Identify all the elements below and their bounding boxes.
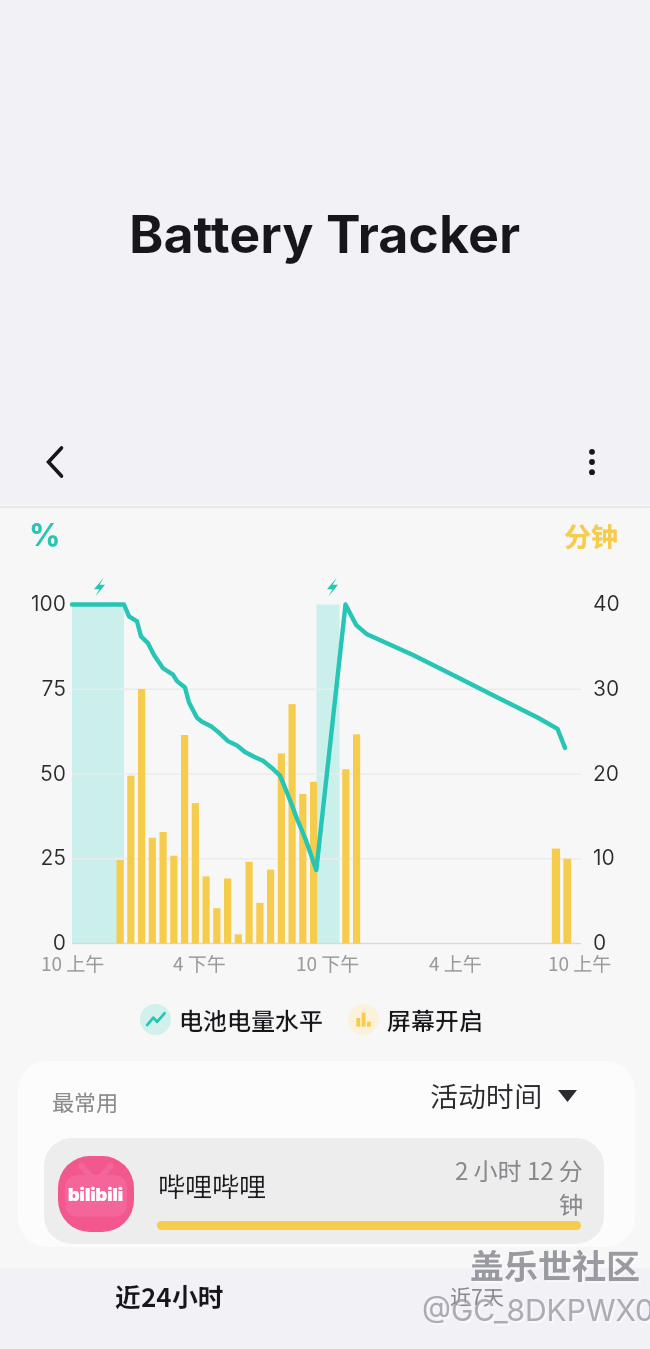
staticText: 20	[593, 761, 620, 786]
button[interactable]: Back	[27, 434, 83, 490]
button[interactable]: 屏幕开启	[348, 1002, 483, 1037]
button[interactable]: bilibili	[44, 1138, 604, 1244]
staticText: %	[29, 516, 61, 554]
staticText: 75	[0, 676, 66, 701]
staticText: 4 上午	[429, 949, 482, 977]
staticText: 30	[593, 676, 620, 701]
button[interactable]: 活动时间	[430, 1075, 577, 1116]
button[interactable]: 电池电量水平	[140, 1002, 323, 1037]
staticText: 10	[593, 845, 615, 870]
staticText: 盖乐世社区	[472, 1242, 642, 1291]
staticText: 10 下午	[296, 949, 360, 977]
staticText: 盖乐世社区	[470, 1240, 640, 1289]
staticText: 2 小时 12 分钟	[438, 1152, 583, 1221]
staticText: 分钟	[564, 516, 618, 555]
staticText: Battery Tracker	[129, 203, 521, 266]
staticText: 40	[593, 591, 620, 616]
staticText: @GC_8DKPWX0	[424, 1294, 650, 1330]
staticText: 0	[593, 930, 607, 955]
staticText: 电池电量水平	[179, 1002, 323, 1037]
button[interactable]: 近24小时	[54, 1274, 284, 1318]
staticText: 0	[0, 930, 66, 955]
button[interactable]: 近7天	[387, 1276, 567, 1316]
staticText: 4 下午	[173, 949, 226, 977]
staticText: 100	[0, 591, 66, 616]
staticText: 最常用	[52, 1085, 119, 1117]
staticText: 25	[0, 845, 66, 870]
staticText: bilibili	[68, 1184, 124, 1206]
staticText: 50	[0, 761, 66, 786]
staticText: 活动时间	[430, 1075, 543, 1116]
staticText: 近7天	[450, 1281, 504, 1311]
staticText: 屏幕开启	[387, 1002, 483, 1037]
staticText: 10 上午	[548, 949, 612, 977]
button[interactable]: More options	[564, 434, 620, 490]
staticText: 哔哩哔哩	[158, 1166, 266, 1205]
staticText: @GC_8DKPWX0	[422, 1292, 650, 1328]
staticText: 10 上午	[41, 949, 105, 977]
staticText: 近24小时	[115, 1277, 224, 1315]
